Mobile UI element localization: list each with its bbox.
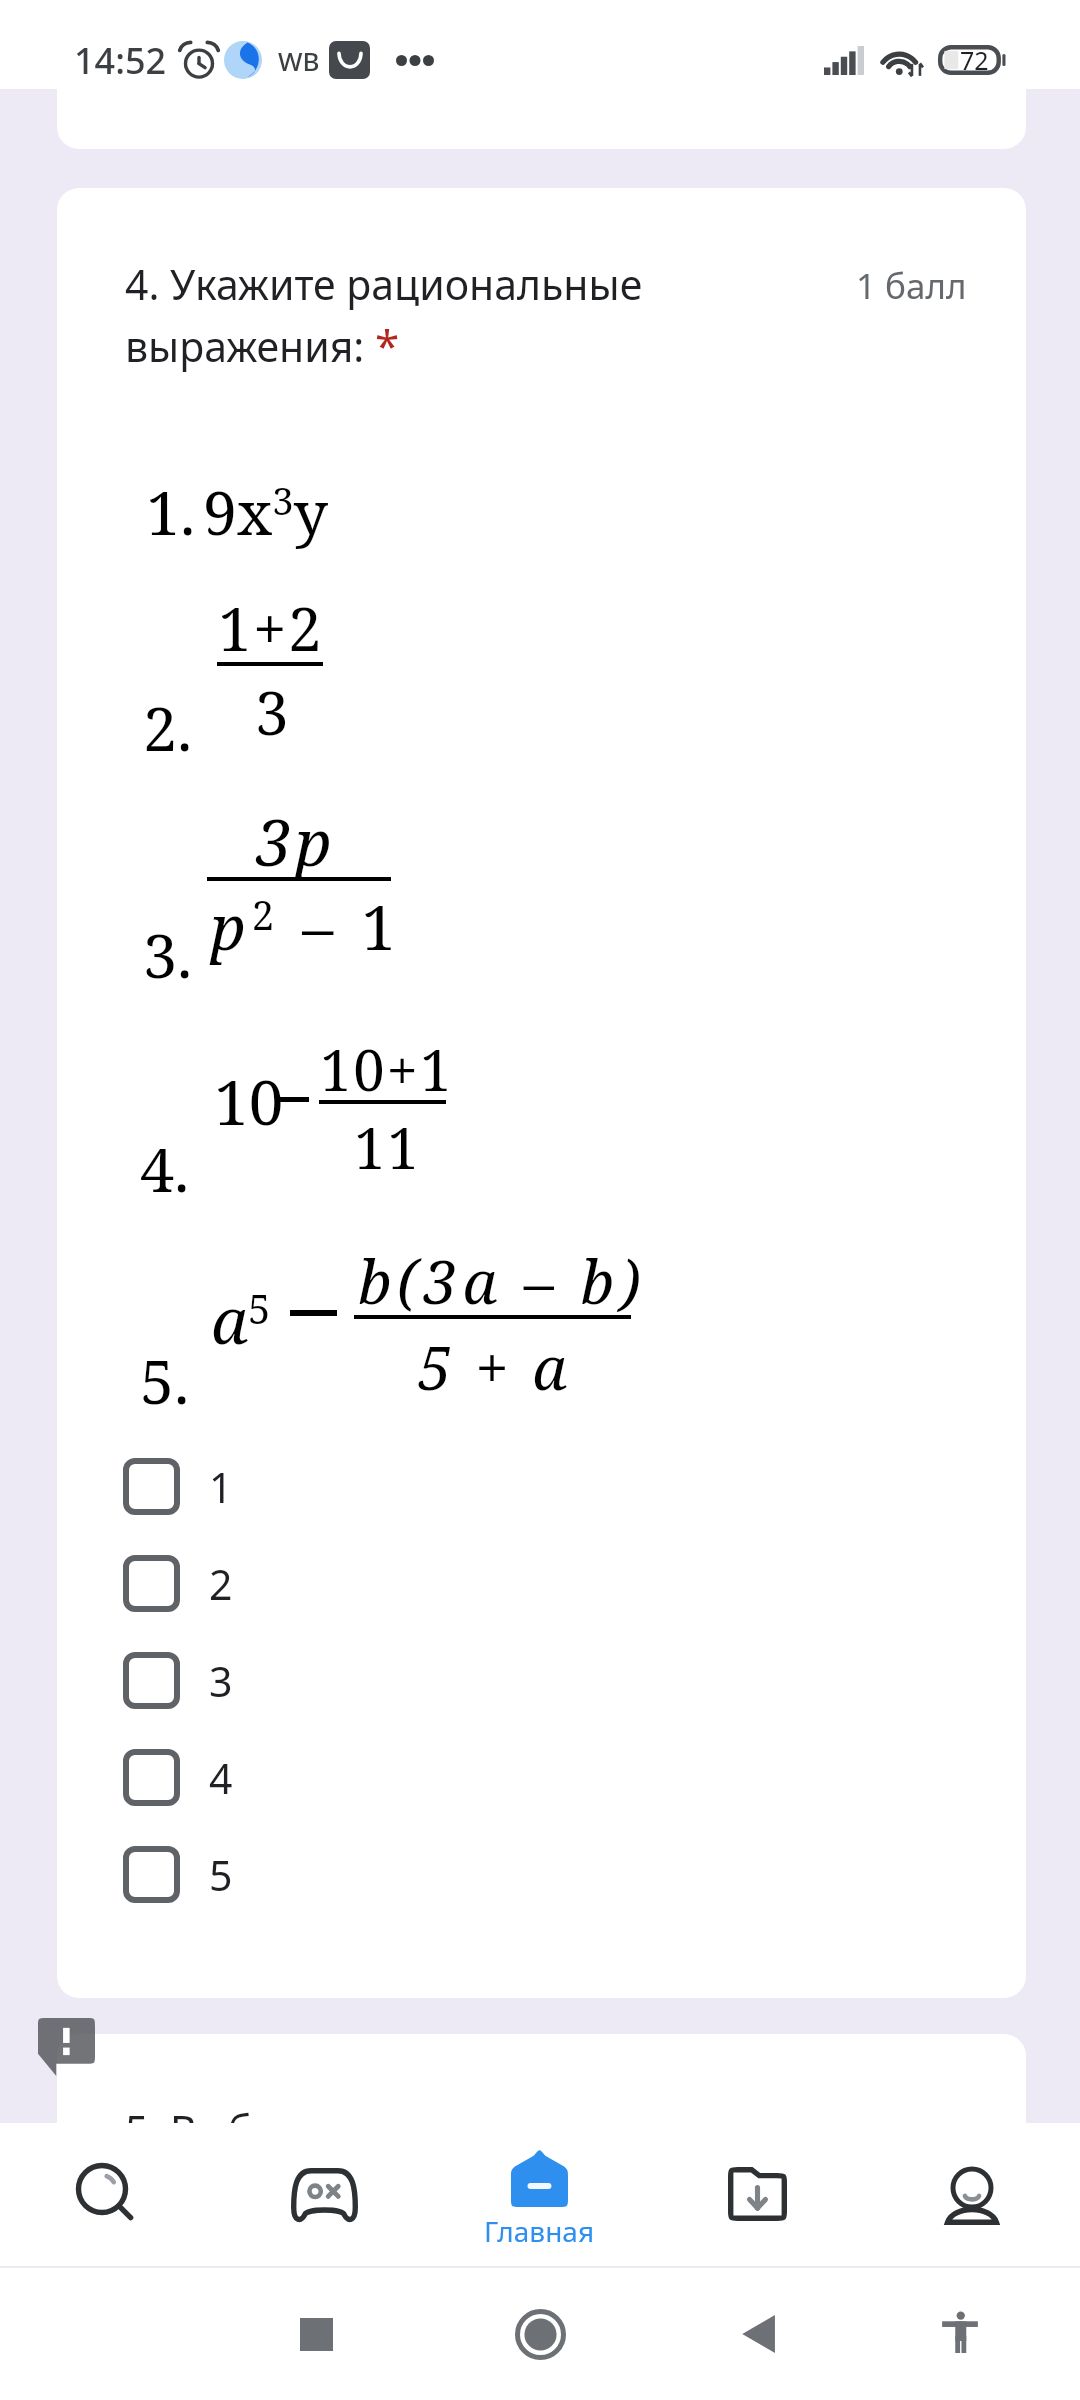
staticText: 1+2 xyxy=(218,587,324,669)
button[interactable]: Загрузки xyxy=(667,2123,847,2268)
button[interactable]: Home xyxy=(490,2284,590,2384)
button[interactable]: 2 xyxy=(107,1535,387,1632)
button[interactable]: 4 xyxy=(107,1729,387,1826)
staticText: 2. xyxy=(143,686,193,769)
staticText: 3 xyxy=(209,1653,233,1709)
button[interactable]: Сообщить о проблеме xyxy=(38,2018,95,2076)
staticText: 4 xyxy=(209,1750,233,1806)
staticText: 14:52 xyxy=(74,36,167,85)
staticText: Главная xyxy=(464,2212,614,2250)
button[interactable]: Accessibility xyxy=(910,2282,1010,2382)
staticText: 2 xyxy=(209,1556,233,1612)
staticText: 5 xyxy=(209,1847,233,1903)
staticText: 1 балл xyxy=(856,262,967,310)
staticText: 3 xyxy=(255,671,289,753)
button[interactable]: Игры xyxy=(234,2123,414,2268)
staticText: b(3a – b) xyxy=(358,1240,646,1322)
staticText: 1 xyxy=(209,1459,233,1515)
staticText: 5. xyxy=(140,1339,190,1422)
staticText: 72 xyxy=(960,43,989,77)
staticText: 3. xyxy=(143,913,193,996)
staticText: 10 xyxy=(214,1059,284,1143)
staticText: 3p xyxy=(256,798,335,885)
button[interactable]: Поиск xyxy=(17,2123,197,2268)
staticText: 1. xyxy=(146,470,196,553)
button[interactable]: Back xyxy=(709,2284,809,2384)
staticText: 10+1 xyxy=(320,1031,454,1107)
staticText: 4. Укажите рациональные выражения: * xyxy=(125,256,681,375)
button[interactable]: 5 xyxy=(107,1826,387,1923)
staticText: 9x3y xyxy=(203,470,329,553)
button[interactable]: Recents xyxy=(266,2284,366,2384)
button[interactable]: 3 xyxy=(107,1632,387,1729)
staticText: p2 – 1 xyxy=(210,884,403,968)
button[interactable]: 1 xyxy=(107,1438,387,1535)
staticText: WB xyxy=(278,43,320,78)
staticText: a5 xyxy=(211,1276,271,1363)
button[interactable]: Профиль xyxy=(882,2123,1062,2268)
staticText: 4. xyxy=(140,1127,190,1210)
staticText: 5 + a xyxy=(418,1326,572,1408)
staticText: 5. Выберите xyxy=(125,2102,367,2158)
staticText: 11 xyxy=(354,1109,421,1185)
button[interactable]: Главная xyxy=(449,2123,629,2268)
